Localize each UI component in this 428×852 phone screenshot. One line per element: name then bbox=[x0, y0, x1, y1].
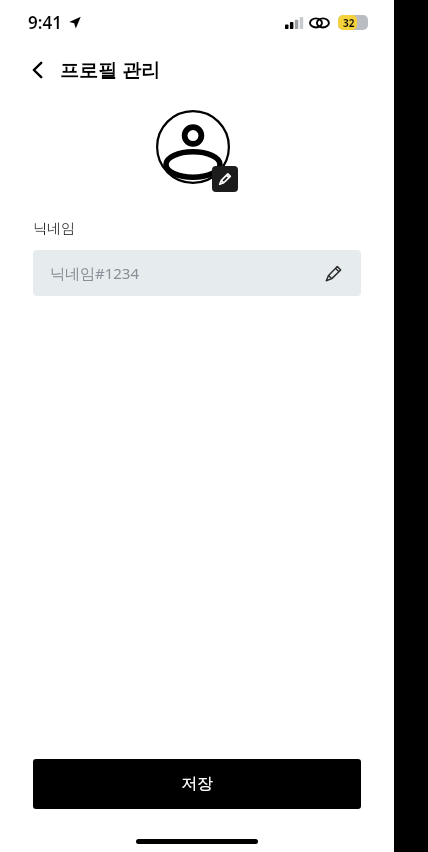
staticText: 저장 bbox=[181, 774, 213, 794]
button[interactable]: Back bbox=[18, 50, 58, 90]
button[interactable]: 저장 bbox=[33, 759, 361, 809]
staticText: 9:41 bbox=[28, 11, 62, 34]
staticText: 32 bbox=[343, 16, 355, 30]
other: Edit nickname bbox=[322, 262, 344, 284]
staticText: 프로필 관리 bbox=[60, 57, 160, 83]
staticText: 닉네임 bbox=[33, 220, 75, 238]
button[interactable]: 닉네임#1234 bbox=[33, 250, 361, 296]
button[interactable]: Change profile photo bbox=[156, 110, 238, 192]
staticText: 닉네임#1234 bbox=[50, 263, 140, 283]
